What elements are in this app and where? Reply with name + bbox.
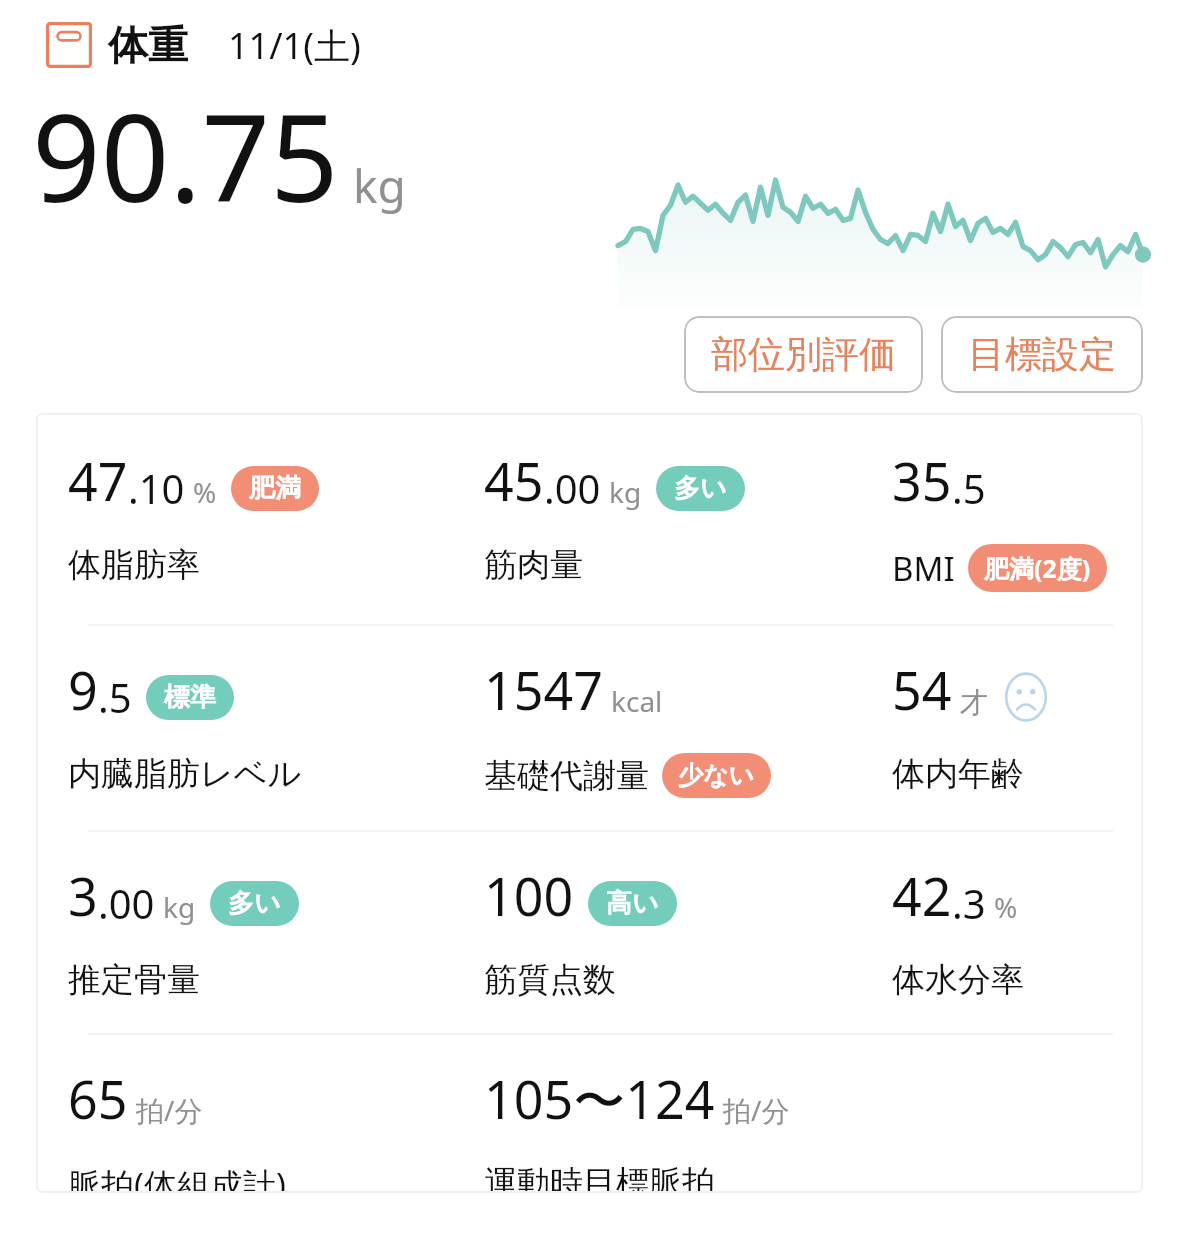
staticText: kg <box>163 888 196 926</box>
button[interactable]: 45 <box>484 445 892 586</box>
button[interactable]: 35 <box>892 445 1143 592</box>
button[interactable]: 1547 <box>484 654 892 798</box>
staticText: 脈拍(体組成計) <box>68 1162 286 1193</box>
staticText: 推定骨量 <box>68 959 200 1001</box>
staticText: 100 <box>484 860 574 931</box>
staticText: 90.75 <box>32 74 339 237</box>
button[interactable]: 100 <box>484 860 892 1001</box>
button[interactable]: 54 <box>892 654 1143 795</box>
staticText: 47 <box>68 445 128 516</box>
staticText: 筋肉量 <box>484 544 583 586</box>
staticText: 35 <box>892 445 952 516</box>
staticText: kg <box>609 473 642 511</box>
staticText: 内臓脂肪レベル <box>68 753 302 795</box>
button[interactable]: 目標設定 <box>941 316 1143 393</box>
staticText: 9 <box>68 654 98 725</box>
staticText: 拍/分 <box>136 1091 203 1129</box>
staticText: 体脂肪率 <box>68 544 200 586</box>
button[interactable]: 部位別評価 <box>684 316 923 393</box>
staticText: 肥満 <box>249 472 301 505</box>
staticText: .5 <box>98 670 132 724</box>
staticText: 筋質点数 <box>484 959 616 1001</box>
staticText: 1547 <box>484 654 603 725</box>
button[interactable]: 105〜124 <box>484 1063 1143 1193</box>
staticText: kcal <box>611 682 663 720</box>
staticText: 体重 <box>108 20 188 70</box>
staticText: 54 <box>892 654 952 725</box>
staticText: 42 <box>892 860 952 931</box>
other: Body age status <box>1000 671 1052 723</box>
staticText: .00 <box>544 461 601 515</box>
staticText: 体水分率 <box>892 959 1024 1001</box>
staticText: 65 <box>68 1063 128 1134</box>
button[interactable]: 65 <box>68 1063 484 1193</box>
staticText: 3 <box>68 860 98 931</box>
staticText: BMI <box>892 546 955 591</box>
staticText: 標準 <box>164 681 216 714</box>
staticText: 運動時目標脈拍 <box>484 1162 715 1193</box>
button[interactable]: 47 <box>68 445 484 586</box>
staticText: kg <box>353 154 406 217</box>
staticText: 拍/分 <box>723 1091 790 1129</box>
staticText: 体内年齢 <box>892 753 1024 795</box>
staticText: .00 <box>98 876 155 930</box>
button[interactable]: 9 <box>68 654 484 795</box>
staticText: 105〜124 <box>484 1063 715 1134</box>
staticText: 少ない <box>678 760 755 791</box>
staticText: .10 <box>128 461 185 515</box>
staticText: % <box>193 473 217 511</box>
staticText: .3 <box>952 876 986 930</box>
staticText: 基礎代謝量 <box>484 755 649 797</box>
button[interactable]: 3 <box>68 860 484 1001</box>
staticText: 11/1(土) <box>228 21 361 70</box>
staticText: 多い <box>674 472 727 505</box>
staticText: 目標設定 <box>968 331 1116 378</box>
staticText: .5 <box>952 461 986 515</box>
staticText: 部位別評価 <box>711 331 896 378</box>
staticText: % <box>994 888 1018 926</box>
staticText: 才 <box>960 685 988 720</box>
staticText: 高い <box>606 887 659 920</box>
staticText: 多い <box>228 887 281 920</box>
staticText: 肥満(2度) <box>984 551 1091 585</box>
button[interactable]: 42 <box>892 860 1143 1001</box>
staticText: 45 <box>484 445 544 516</box>
